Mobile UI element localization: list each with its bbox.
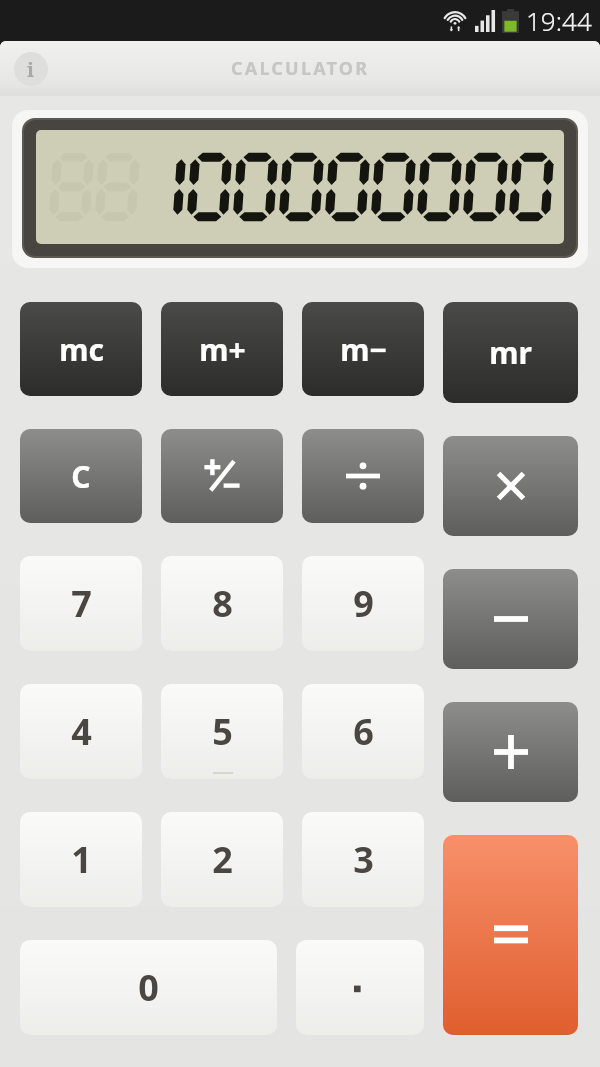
staticText: 5 [212, 707, 233, 756]
staticText: i [27, 56, 35, 83]
button[interactable]: 1 [20, 812, 142, 907]
staticText: CALCULATOR [231, 56, 370, 81]
button[interactable]: 4 [20, 684, 142, 779]
button[interactable]: 0 [20, 940, 277, 1035]
button[interactable] [302, 429, 424, 523]
button[interactable]: mc [20, 302, 142, 396]
button[interactable]: About [14, 52, 48, 86]
staticText: m+ [199, 329, 246, 370]
staticText: mr [489, 332, 532, 373]
button[interactable]: 2 [161, 812, 283, 907]
staticText: 3 [353, 835, 374, 884]
staticText: 4 [71, 707, 92, 756]
staticText: 6 [353, 707, 374, 756]
button[interactable]: 5 [161, 684, 283, 779]
staticText: 19:44 [526, 3, 592, 38]
staticText: 9 [353, 579, 374, 628]
button[interactable]: m− [302, 302, 424, 396]
button[interactable]: m+ [161, 302, 283, 396]
button[interactable] [443, 569, 578, 669]
button[interactable] [161, 429, 283, 523]
staticText: mc [59, 329, 104, 370]
button[interactable]: mr [443, 302, 578, 403]
button[interactable]: 6 [302, 684, 424, 779]
staticText: 1 [71, 835, 92, 884]
button[interactable] [443, 835, 578, 1035]
staticText: 7 [71, 579, 92, 628]
button[interactable]: 8 [161, 556, 283, 651]
staticText: C [71, 456, 91, 497]
button[interactable] [443, 702, 578, 802]
staticText: 8 [212, 579, 233, 628]
staticText: m− [340, 329, 387, 370]
button[interactable]: 7 [20, 556, 142, 651]
staticText: 2 [212, 835, 233, 884]
button[interactable] [443, 436, 578, 536]
staticText: 0 [138, 963, 159, 1012]
button[interactable] [296, 940, 424, 1035]
button[interactable]: C [20, 429, 142, 523]
button[interactable]: 9 [302, 556, 424, 651]
button[interactable]: 3 [302, 812, 424, 907]
